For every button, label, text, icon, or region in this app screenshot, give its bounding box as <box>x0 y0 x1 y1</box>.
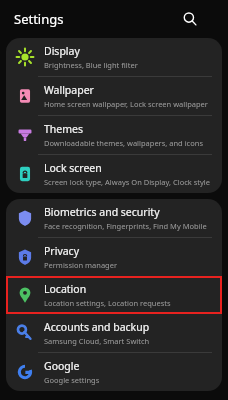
button[interactable]: Accounts and backup <box>6 314 222 352</box>
staticText: Location settings, Location requests <box>44 298 171 308</box>
staticText: Permission manager <box>44 260 118 270</box>
staticText: Downloadable themes, wallpapers, and ico… <box>44 138 203 148</box>
staticText: Samsung Cloud, Smart Switch <box>44 336 150 346</box>
button[interactable]: Location <box>6 276 222 314</box>
button[interactable]: Lock screen <box>6 155 222 193</box>
staticText: Home screen wallpaper, Lock screen wallp… <box>44 99 208 109</box>
staticText: Location <box>44 282 87 296</box>
staticText: Google <box>44 359 80 373</box>
button[interactable]: Display <box>6 38 222 76</box>
staticText: Google settings <box>44 375 100 385</box>
staticText: Accounts and backup <box>44 320 150 334</box>
button[interactable]: Biometrics and security <box>6 199 222 237</box>
staticText: Brightness, Blue light filter <box>44 60 138 70</box>
button[interactable]: Themes <box>6 116 222 154</box>
staticText: Wallpaper <box>44 83 94 97</box>
staticText: Face recognition, Fingerprints, Find My … <box>44 221 207 231</box>
button[interactable]: Wallpaper <box>6 77 222 115</box>
staticText: Screen lock type, Always On Display, Clo… <box>44 177 211 187</box>
staticText: Settings <box>14 10 64 28</box>
staticText: Biometrics and security <box>44 205 160 219</box>
staticText: Lock screen <box>44 161 102 175</box>
button[interactable]: Search <box>178 7 202 31</box>
button[interactable]: Google <box>6 353 222 391</box>
staticText: Privacy <box>44 244 80 258</box>
staticText: Themes <box>44 122 84 136</box>
button[interactable]: Privacy <box>6 238 222 276</box>
staticText: Display <box>44 44 80 58</box>
